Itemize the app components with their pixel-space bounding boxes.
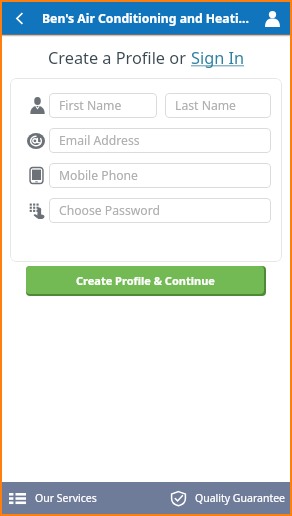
staticText: Quality Guarantee	[195, 491, 286, 505]
staticText: Email Address	[59, 132, 140, 149]
button[interactable]: Create Profile & Continue	[26, 266, 264, 294]
button[interactable]: Email Address	[49, 128, 271, 153]
staticText: Choose Password	[59, 202, 160, 219]
staticText: First Name	[59, 97, 122, 114]
staticText: Mobile Phone	[59, 167, 138, 184]
button[interactable]: First Name	[49, 93, 157, 118]
button[interactable]: Account	[254, 2, 290, 34]
staticText: Sign In	[191, 47, 245, 69]
button[interactable]: Choose Password	[49, 198, 271, 223]
button[interactable]: Sign In	[191, 47, 245, 69]
button[interactable]: Last Name	[165, 93, 271, 118]
button[interactable]: Mobile Phone	[49, 163, 271, 188]
button[interactable]: Quality Guarantee	[146, 482, 290, 514]
button[interactable]: Our Services	[2, 482, 146, 514]
button[interactable]: Back	[2, 2, 36, 34]
staticText: Create Profile & Continue	[76, 273, 215, 288]
staticText: Create a Profile or	[48, 47, 191, 69]
staticText: Last Name	[175, 97, 236, 114]
staticText: Ben's Air Conditioning and Heati...	[42, 10, 254, 27]
staticText: Our Services	[35, 491, 97, 505]
